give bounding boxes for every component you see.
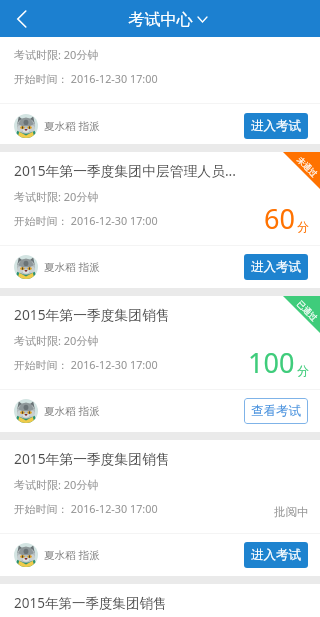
staticText: 开始时间： 2016-12-30 17:00 [14, 501, 158, 516]
staticText: 开始时间： 2016-12-30 17:00 [14, 71, 158, 86]
staticText: 60 [264, 200, 295, 237]
staticText: 查看考试 [251, 403, 301, 419]
staticText: 100 [248, 344, 295, 381]
button[interactable]: 进入考试 [244, 254, 308, 280]
staticText: 2015年第一季度集团销售 [14, 305, 266, 324]
button[interactable]: Back [0, 0, 44, 37]
staticText: 考试中心 [128, 9, 193, 29]
staticText: 考试时限: 20分钟 [14, 189, 99, 204]
staticText: 考试时限: 20分钟 [14, 333, 99, 348]
staticText: 未通过 [295, 155, 320, 179]
staticText: 进入考试 [251, 259, 301, 275]
staticText: 进入考试 [251, 118, 301, 134]
staticText: 夏水稻 指派 [44, 548, 100, 562]
button[interactable]: 进入考试 [244, 542, 308, 568]
staticText: 夏水稻 指派 [44, 404, 100, 418]
staticText: 分 [297, 363, 309, 378]
staticText: 夏水稻 指派 [44, 260, 100, 274]
staticText: 批阅中 [274, 505, 309, 519]
staticText: 进入考试 [251, 547, 301, 563]
button[interactable]: 进入考试 [244, 113, 308, 139]
staticText: 2015年第一季度集团销售 [14, 449, 266, 468]
staticText: 开始时间： 2016-12-30 17:00 [14, 357, 158, 372]
button[interactable]: 考试中心 [128, 9, 207, 29]
staticText: 2015年第一季度集团中层管理人员... [14, 161, 266, 180]
button[interactable]: 查看考试 [244, 398, 308, 424]
staticText: 开始时间： 2016-12-30 17:00 [14, 213, 158, 228]
staticText: 考试时限: 20分钟 [14, 477, 99, 492]
staticText: 考试时限: 20分钟 [14, 47, 99, 62]
staticText: 已通过 [295, 299, 320, 323]
staticText: 分 [297, 219, 309, 234]
staticText: 夏水稻 指派 [44, 119, 100, 133]
staticText: 2015年第一季度集团销售 [14, 594, 167, 612]
